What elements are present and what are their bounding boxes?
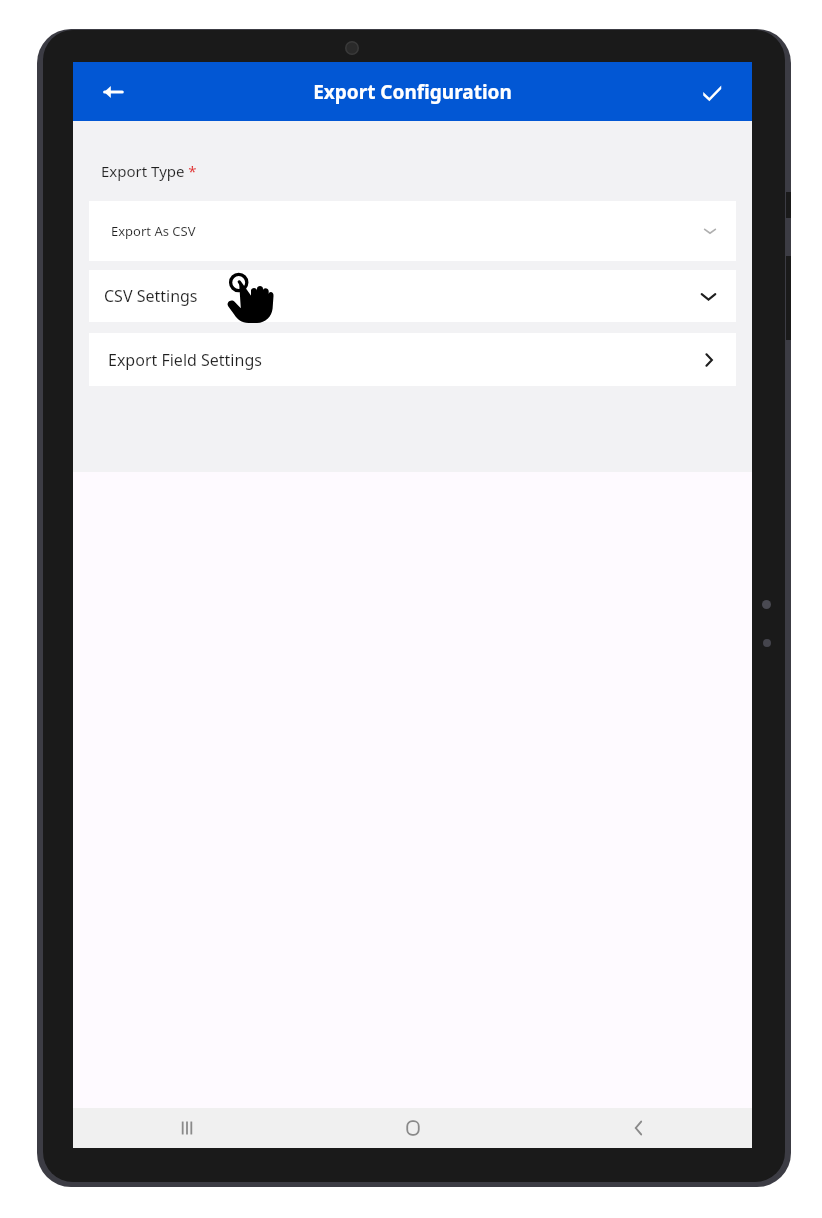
button[interactable]: Save: [688, 68, 736, 116]
staticText: Export Type *: [101, 161, 197, 181]
button[interactable]: Export As CSV: [89, 201, 736, 261]
button[interactable]: Recents: [73, 1108, 300, 1148]
staticText: Export As CSV: [111, 222, 196, 240]
button[interactable]: Home: [300, 1108, 526, 1148]
staticText: Export Configuration: [313, 79, 512, 105]
staticText: CSV Settings: [104, 285, 198, 307]
button[interactable]: Back: [526, 1108, 752, 1148]
button[interactable]: Back: [89, 68, 137, 116]
button[interactable]: Export Field Settings: [89, 333, 736, 386]
staticText: Export Field Settings: [108, 349, 262, 371]
button[interactable]: CSV Settings: [89, 270, 736, 322]
